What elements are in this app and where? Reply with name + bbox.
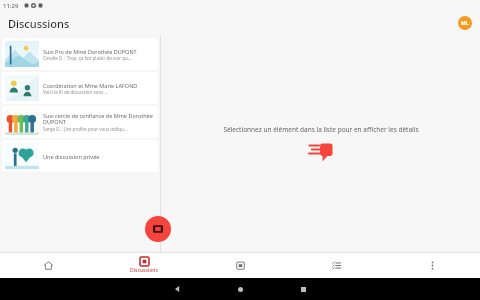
staticText: Suvi cercle de confiance de Mme Dorothée… (43, 112, 155, 126)
button[interactable]: Profile ML (458, 16, 472, 30)
button[interactable]: Coordination et Mme Marie LAFOND (2, 72, 158, 104)
staticText: Une discussion privée (43, 153, 100, 160)
staticText: Suvi Pro de Mme Dorothée DUPONT (43, 48, 137, 55)
button[interactable]: Suvi Pro de Mme Dorothée DUPONT (2, 38, 158, 70)
button[interactable]: Home (235, 284, 245, 294)
button[interactable]: Agenda (192, 253, 288, 278)
button[interactable]: New discussion (145, 216, 171, 242)
staticText: Serge D. : J'en profite pour vous indiqu… (43, 126, 128, 132)
staticText: Coralie D. : Trop, ça fait plaisir de vo… (43, 55, 132, 61)
button[interactable]: Tasks (288, 253, 384, 278)
button[interactable]: Home (0, 253, 96, 278)
button[interactable]: Back (173, 284, 183, 294)
button[interactable]: Suvi cercle de confiance de Mme Dorothée… (2, 106, 158, 138)
staticText: Sélectionnez un élément dans la liste po… (223, 125, 419, 134)
button[interactable]: More (384, 253, 480, 278)
staticText: Discussions (130, 267, 158, 274)
button[interactable]: Discussions (96, 253, 192, 278)
staticText: Coordination et Mme Marie LAFOND (43, 82, 138, 89)
button[interactable]: Recents (298, 284, 308, 294)
staticText: Discussions (8, 16, 70, 31)
staticText: 11:29 (3, 2, 19, 10)
staticText: Voici le fil de discussion vous ... (43, 89, 109, 95)
staticText: ML (461, 20, 469, 27)
button[interactable]: Une discussion privée (2, 140, 158, 172)
